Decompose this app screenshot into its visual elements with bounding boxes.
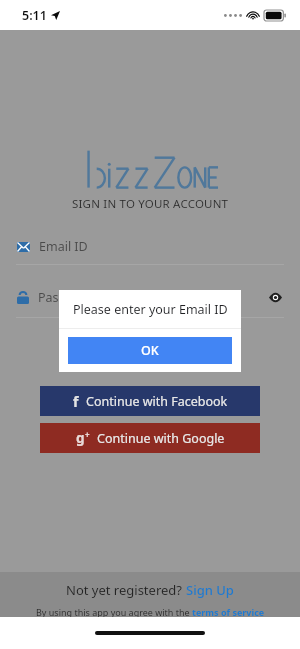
button[interactable]: Show password [264, 286, 286, 308]
staticText: 5:11 [22, 7, 47, 24]
staticText: By using this app you agree with the [36, 606, 192, 617]
button[interactable]: g [40, 423, 260, 453]
staticText: f [73, 392, 79, 411]
button[interactable]: f [40, 386, 260, 416]
staticText: OK [141, 342, 159, 359]
button[interactable]: By using this app you agree with the [36, 606, 265, 617]
button[interactable]: Forgot Password? [0, 348, 300, 365]
staticText: Continue with Facebook [86, 393, 228, 410]
staticText: Continue with Google [97, 430, 225, 447]
staticText: + [85, 429, 90, 440]
staticText: SIGN IN TO YOUR ACCOUNT [72, 196, 229, 212]
staticText: Please enter your Email ID [73, 301, 228, 318]
staticText: Sign Up [186, 581, 234, 599]
staticText: Forgot Password? [98, 348, 203, 365]
button[interactable]: Not yet registered? [66, 581, 234, 599]
staticText: Password [38, 289, 95, 306]
staticText: Not yet registered? [66, 581, 186, 599]
button[interactable]: OK [68, 337, 232, 364]
staticText: Email ID [39, 238, 88, 255]
button[interactable]: Email ID [0, 238, 300, 265]
button[interactable]: Password [0, 286, 300, 318]
staticText: terms of service [192, 606, 265, 617]
staticText: g [76, 429, 85, 447]
